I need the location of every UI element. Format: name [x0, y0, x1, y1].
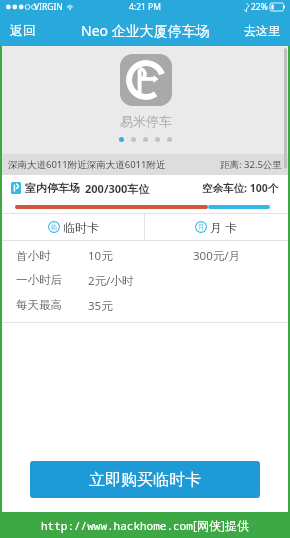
staticText: 去这里 — [244, 23, 280, 38]
staticText: 返回 — [10, 22, 36, 38]
staticText: 月 — [198, 223, 204, 231]
staticText: 22% — [251, 1, 268, 13]
staticText: 10元 — [88, 248, 113, 264]
staticText: 易米停车 — [120, 113, 172, 129]
staticText: 临 — [51, 223, 57, 231]
staticText: 临时卡 — [63, 220, 99, 235]
staticText: VIRGIN — [34, 1, 63, 13]
staticText: 室内停车场 — [25, 181, 80, 195]
button[interactable]: 月 — [145, 214, 288, 240]
staticText: 空余车位: 100个 — [202, 181, 279, 195]
staticText: [网侠]提供 — [193, 517, 249, 533]
staticText: 首小时 — [16, 249, 51, 263]
staticText: 距离: 32.5公里 — [220, 158, 282, 171]
staticText: http://www.hackhome.com — [41, 518, 193, 533]
staticText: 2元/小时 — [88, 273, 134, 289]
staticText: 每天最高 — [16, 298, 62, 312]
staticText: 一小时后 — [16, 273, 62, 287]
button[interactable]: 返回 — [0, 14, 46, 46]
staticText: 35元 — [88, 298, 113, 314]
staticText: 200/300车位 — [85, 181, 150, 196]
button[interactable]: 去这里 — [234, 14, 290, 46]
staticText: 深南大道6011附近深南大道6011附近 — [8, 158, 166, 171]
staticText: 月 卡 — [210, 219, 238, 235]
staticText: 4:21 PM — [129, 1, 161, 13]
staticText: Neo 企业大厦停车场 — [81, 21, 210, 40]
staticText: 300元/月 — [193, 248, 241, 264]
staticText: 立即购买临时卡 — [89, 470, 201, 490]
button[interactable]: 立即购买临时卡 — [30, 461, 260, 498]
button[interactable]: 临 — [2, 214, 144, 240]
